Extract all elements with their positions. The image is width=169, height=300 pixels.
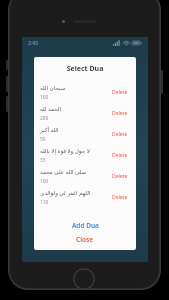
staticText: 100 xyxy=(40,178,49,185)
staticText: Add Dua xyxy=(72,221,99,230)
staticText: 200 xyxy=(40,115,49,122)
button[interactable]: Add Dua xyxy=(34,218,136,232)
button[interactable]: سبحان الله xyxy=(34,82,136,103)
button[interactable]: Close xyxy=(34,232,136,246)
staticText: 110 xyxy=(40,199,49,206)
staticText: Delete xyxy=(112,131,128,138)
button[interactable]: الحمد لله xyxy=(34,103,136,124)
staticText: Delete xyxy=(112,194,128,201)
button[interactable]: Delete xyxy=(110,129,130,140)
button[interactable]: Delete xyxy=(110,87,130,98)
button[interactable]: Delete xyxy=(110,150,130,161)
staticText: Select Dua xyxy=(34,64,136,74)
button[interactable]: لا حول ولا قوة إلا بالله xyxy=(34,145,136,166)
staticText: 2:43 xyxy=(28,40,38,47)
button[interactable]: اللهم اغفر لي ولوالدي xyxy=(34,187,136,208)
button[interactable]: صلى الله على محمد xyxy=(34,166,136,187)
staticText: لا حول ولا قوة إلا بالله xyxy=(40,147,90,155)
button[interactable]: Delete xyxy=(110,171,130,182)
staticText: اللهم اغفر لي ولوالدي xyxy=(40,189,91,197)
staticText: Delete xyxy=(112,152,128,159)
staticText: Delete xyxy=(112,110,128,117)
staticText: Close xyxy=(76,235,94,244)
staticText: الله أكبر xyxy=(40,126,59,134)
staticText: صلى الله على محمد xyxy=(40,168,87,176)
staticText: 33 xyxy=(40,157,46,164)
staticText: الحمد لله xyxy=(40,105,62,113)
button[interactable]: Delete xyxy=(110,192,130,203)
button[interactable]: الله أكبر xyxy=(34,124,136,145)
button[interactable]: Delete xyxy=(110,108,130,119)
staticText: Delete xyxy=(112,173,128,180)
staticText: Delete xyxy=(112,89,128,96)
staticText: 100 xyxy=(40,94,49,101)
staticText: 50 xyxy=(40,136,46,143)
button[interactable]: Home xyxy=(73,268,95,290)
staticText: سبحان الله xyxy=(40,84,66,92)
